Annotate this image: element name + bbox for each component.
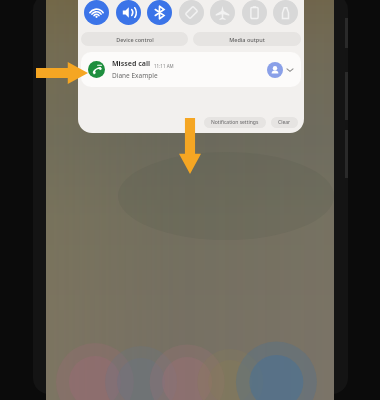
- staticText: Missed call: [112, 59, 151, 69]
- button[interactable]: Battery saver: [242, 0, 267, 25]
- staticText: Notification settings: [211, 119, 259, 126]
- staticText: Clear: [278, 119, 291, 126]
- button[interactable]: Notification settings: [211, 117, 259, 128]
- button[interactable]: Device control: [81, 32, 188, 46]
- button[interactable]: Flashlight: [273, 0, 298, 25]
- button[interactable]: Media output: [193, 32, 301, 46]
- staticText: Media output: [229, 36, 265, 43]
- button[interactable]: Auto rotate: [179, 0, 204, 25]
- staticText: Diane Example: [112, 71, 158, 80]
- button[interactable]: Bluetooth: [147, 0, 172, 25]
- button[interactable]: Airplane mode: [210, 0, 235, 25]
- button[interactable]: Clear: [278, 117, 291, 128]
- button[interactable]: Missed call: [81, 52, 301, 87]
- button[interactable]: Expand: [286, 66, 294, 74]
- button[interactable]: Wi-Fi: [84, 0, 109, 25]
- staticText: 11:11 AM: [154, 63, 174, 69]
- button[interactable]: Sound: [116, 0, 141, 25]
- staticText: Device control: [116, 36, 154, 43]
